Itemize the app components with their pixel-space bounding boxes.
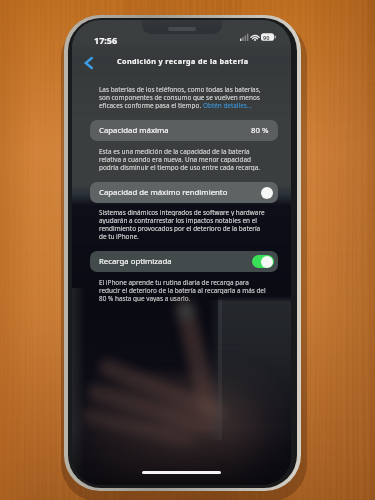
staticText: ayudarán a contrarrestar los impactos no…: [99, 216, 257, 224]
staticText: Recarga optimizada: [99, 256, 172, 267]
staticText: relativa a cuando era nueva. Una menor c…: [99, 155, 251, 163]
staticText: Capacidad máxima: [99, 125, 169, 136]
staticText: 90: [263, 34, 270, 42]
staticText: Capacidad de máximo rendimiento: [99, 187, 228, 198]
staticText: podría disminuir el tiempo de uso entre …: [99, 163, 261, 171]
button[interactable]: Recarga optimizada: [90, 251, 278, 272]
staticText: rendimiento provocados por el deterioro …: [99, 224, 261, 232]
staticText: Las baterías de los teléfonos, como toda…: [99, 85, 261, 93]
staticText: reducir el deterioro de la batería al re…: [99, 286, 266, 294]
button[interactable]: Capacidad máxima: [90, 120, 278, 141]
button[interactable]: Switch on: [252, 255, 274, 268]
button[interactable]: Obtén detalles...: [203, 101, 252, 110]
staticText: son componentes de consumo que se vuelve…: [99, 93, 260, 101]
staticText: El iPhone aprende tu rutina diaria de re…: [99, 278, 249, 286]
staticText: Esta es una medición de la capacidad de …: [99, 147, 250, 155]
staticText: eficaces conforme pasa el tiempo.: [99, 101, 203, 109]
staticText: Sistemas dinámicos integrados de softwar…: [99, 208, 265, 216]
staticText: de tu iPhone.: [99, 232, 139, 240]
staticText: 17:56: [94, 34, 118, 46]
staticText: 80 % hasta que vayas a usarlo.: [99, 294, 191, 302]
button[interactable]: Capacidad de máximo rendimiento: [90, 182, 278, 203]
staticText: Condición y recarga de la batería: [117, 56, 249, 66]
button[interactable]: Back: [79, 53, 99, 73]
button[interactable]: Switch off: [252, 186, 274, 199]
staticText: 80 %: [251, 125, 269, 136]
